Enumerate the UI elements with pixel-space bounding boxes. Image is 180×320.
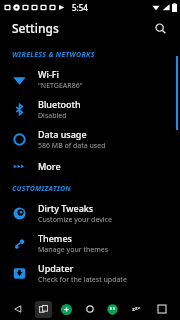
- button[interactable]: More: [0, 154, 180, 178]
- staticText: z: [138, 305, 140, 310]
- staticText: Customize your device: [38, 215, 112, 225]
- staticText: Themes: [38, 232, 72, 244]
- staticText: "NETGEAR86": [38, 81, 83, 91]
- staticText: Bluetooth: [38, 98, 81, 110]
- button[interactable]: Data usage: [0, 124, 180, 154]
- button[interactable]: Wi-Fi: [0, 64, 180, 94]
- staticText: Dirty Tweaks: [38, 202, 94, 214]
- button[interactable]: Search: [150, 18, 170, 38]
- staticText: 5:54: [72, 2, 88, 13]
- staticText: WIRELESS & NETWORKS: [12, 50, 95, 60]
- staticText: z: [132, 305, 135, 313]
- staticText: Disabled: [38, 111, 67, 121]
- staticText: More: [38, 160, 61, 172]
- button[interactable]: Back: [9, 300, 27, 318]
- button[interactable]: Dirty Tweaks: [0, 198, 180, 228]
- button[interactable]: Do not disturb: [127, 300, 145, 318]
- button[interactable]: Bluetooth: [0, 94, 180, 124]
- button[interactable]: Messages: [107, 304, 118, 315]
- staticText: Settings: [12, 20, 59, 36]
- button[interactable]: Last app: [35, 301, 52, 318]
- staticText: Updater: [38, 262, 74, 274]
- button[interactable]: Home: [81, 300, 99, 318]
- staticText: CUSTOMIZATION: [12, 184, 71, 194]
- staticText: 586 MB of data used: [38, 141, 106, 151]
- button[interactable]: Themes: [0, 228, 180, 258]
- staticText: Wi-Fi: [38, 68, 59, 80]
- button[interactable]: Recent apps: [153, 300, 171, 318]
- staticText: Manage your themes: [38, 245, 109, 255]
- staticText: Data usage: [38, 128, 87, 140]
- button[interactable]: Add: [61, 304, 72, 315]
- button[interactable]: Updater: [0, 258, 180, 288]
- staticText: z: [135, 305, 138, 312]
- staticText: Check for the latest update: [38, 275, 127, 285]
